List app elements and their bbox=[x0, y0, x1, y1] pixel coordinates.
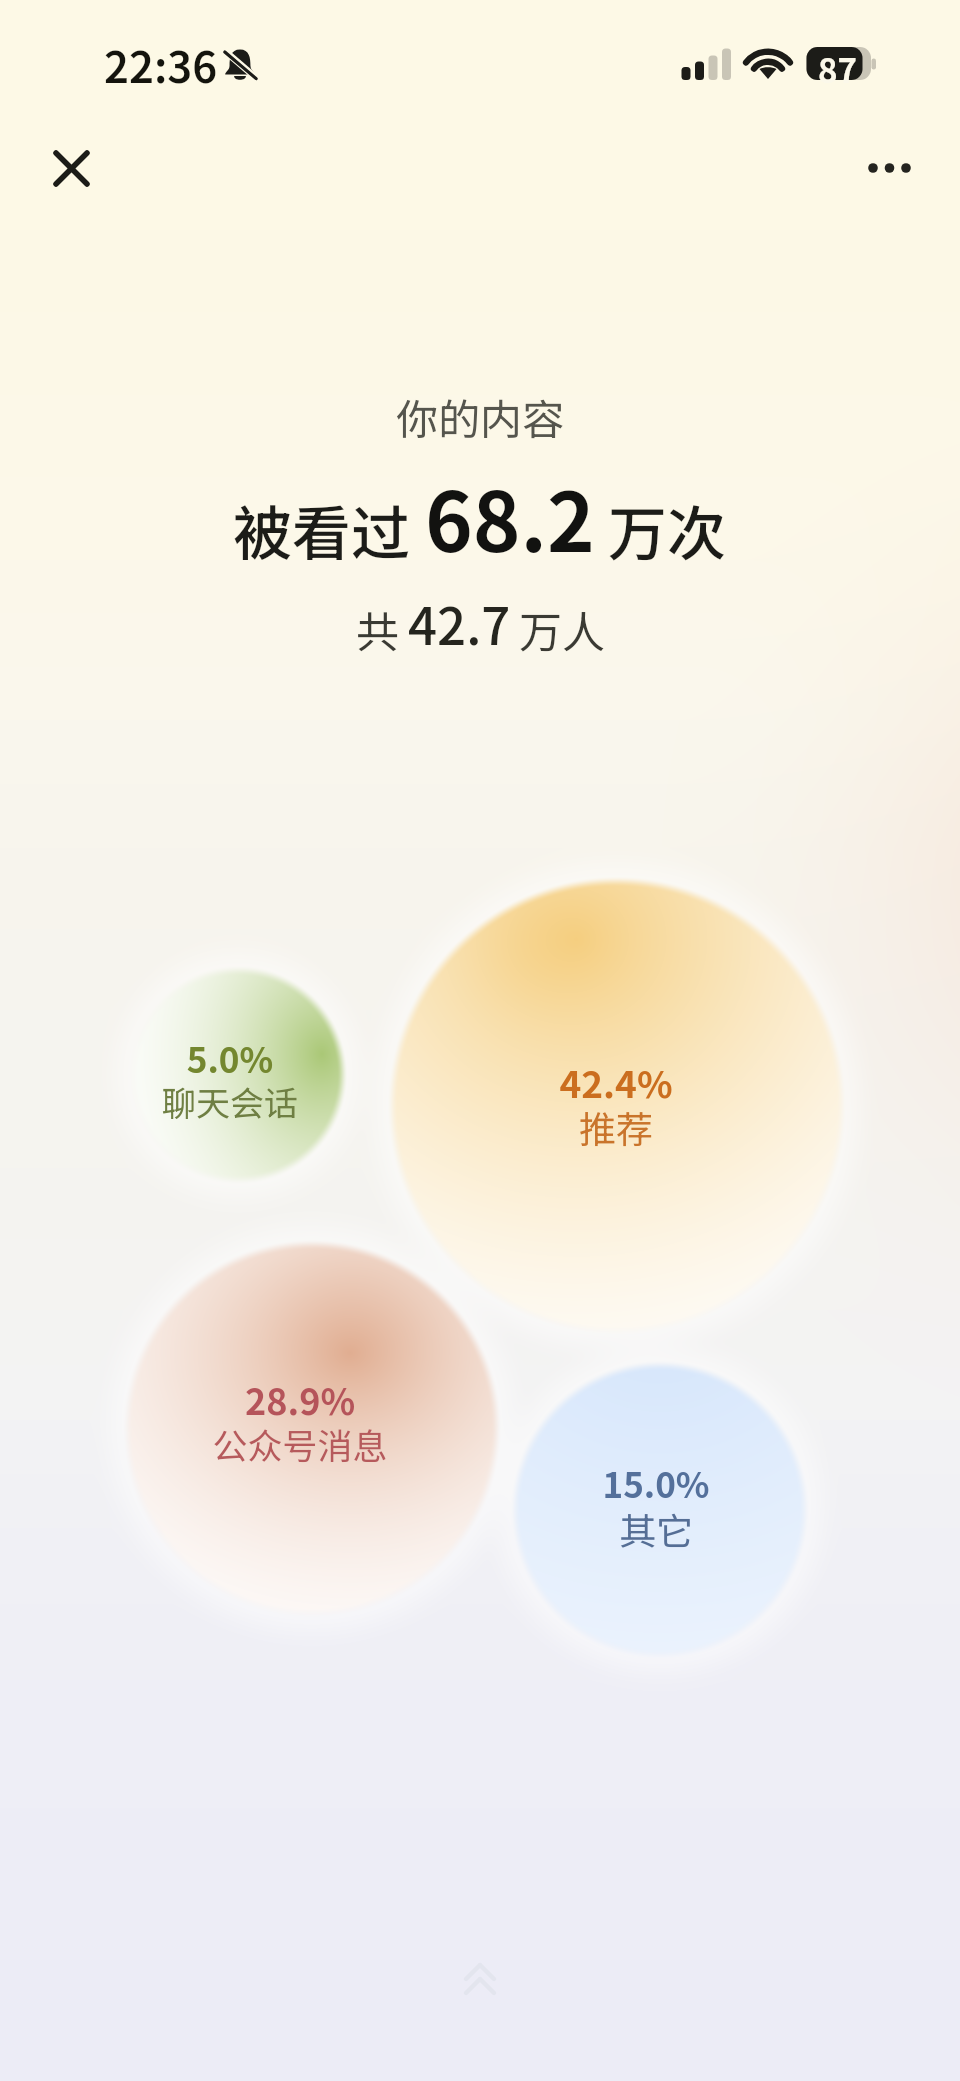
staticText: 15.0% bbox=[456, 1457, 856, 1508]
staticText: 22:36 bbox=[104, 33, 218, 95]
staticText: 5.0% bbox=[30, 1032, 430, 1083]
staticText: 87 bbox=[818, 45, 857, 93]
staticText: 你的内容 bbox=[0, 386, 960, 447]
staticText: 共 bbox=[356, 598, 399, 660]
staticText: 68.2 bbox=[425, 458, 595, 575]
staticText: 聊天会话 bbox=[30, 1077, 430, 1126]
staticText: 万人 bbox=[519, 598, 605, 660]
staticText: 其它 bbox=[456, 1502, 856, 1556]
staticText: 万次 bbox=[608, 487, 727, 572]
staticText: 被看过 bbox=[233, 487, 411, 572]
staticText: 42.7 bbox=[408, 586, 511, 660]
button[interactable]: Close bbox=[30, 128, 112, 210]
staticText: 公众号消息 bbox=[100, 1418, 500, 1469]
staticText: 28.9% bbox=[100, 1373, 500, 1425]
staticText: 42.4% bbox=[416, 1055, 816, 1109]
button[interactable]: More options bbox=[848, 128, 930, 210]
staticText: 推荐 bbox=[416, 1100, 816, 1154]
